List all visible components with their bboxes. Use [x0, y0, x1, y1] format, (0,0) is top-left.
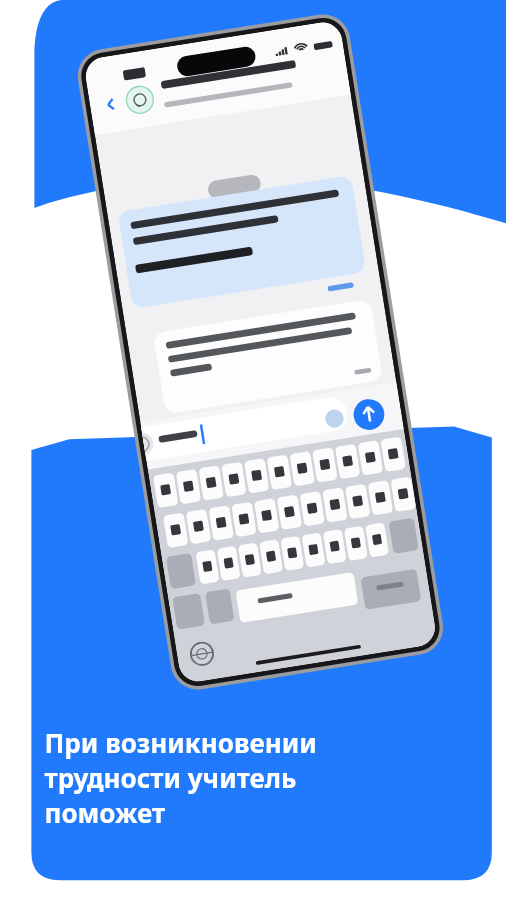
- button[interactable]: Teacher help onboarding: [0, 0, 506, 900]
